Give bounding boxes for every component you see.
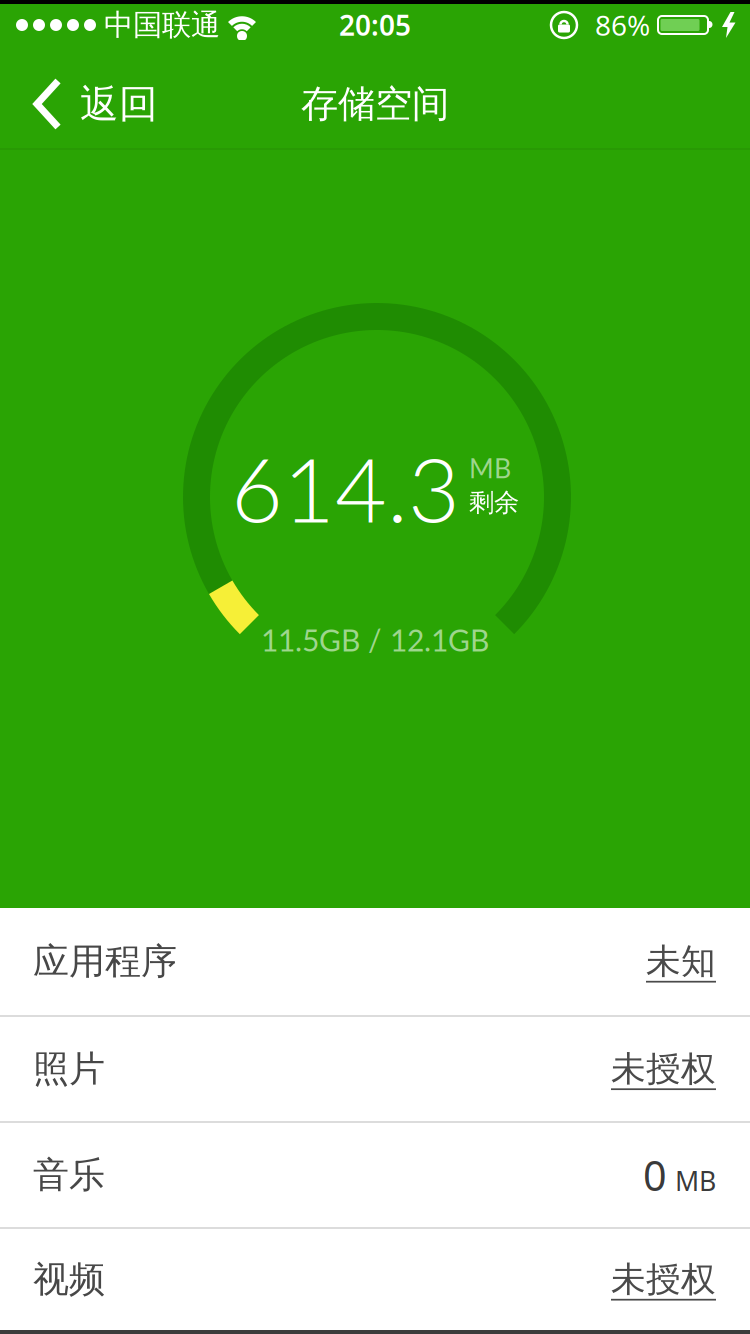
button[interactable]: 照片 xyxy=(0,1017,750,1121)
button[interactable]: 应用程序 xyxy=(0,908,750,1015)
staticText: 未知 xyxy=(646,940,716,983)
staticText: 11.5GB / 12.1GB xyxy=(261,622,489,658)
staticText: 86% xyxy=(595,6,650,44)
button[interactable]: 视频 xyxy=(0,1229,750,1330)
staticText: 剩余 xyxy=(469,487,519,518)
staticText: 0 xyxy=(643,1148,667,1202)
staticText: MB xyxy=(469,452,511,484)
button[interactable]: 音乐 xyxy=(0,1123,750,1227)
staticText: 614.3 xyxy=(231,434,460,542)
staticText: 未授权 xyxy=(611,1048,716,1090)
staticText: 应用程序 xyxy=(33,939,177,984)
staticText: 20:05 xyxy=(339,6,411,44)
button[interactable]: 返回 xyxy=(0,63,158,145)
staticText: 中国联通 xyxy=(104,7,220,43)
staticText: 返回 xyxy=(80,80,158,128)
staticText: 照片 xyxy=(33,1047,105,1091)
staticText: MB xyxy=(675,1163,716,1198)
staticText: 未授权 xyxy=(611,1258,716,1301)
staticText: 音乐 xyxy=(33,1153,105,1197)
staticText: 视频 xyxy=(33,1257,105,1302)
staticText: 存储空间 xyxy=(301,81,449,127)
